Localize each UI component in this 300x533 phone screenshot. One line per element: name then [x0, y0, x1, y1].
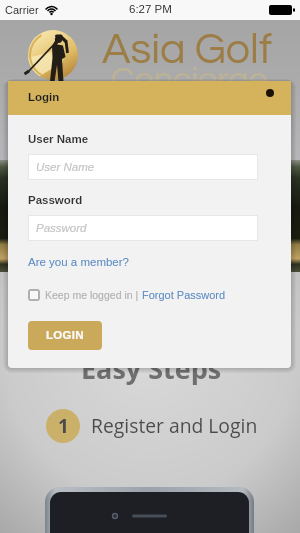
button[interactable]: Are you a member?	[28, 256, 129, 269]
button[interactable]: LOGIN	[28, 321, 102, 350]
staticText: User Name	[36, 161, 95, 174]
staticText: User Name	[28, 133, 89, 146]
staticText: Easy Steps	[81, 350, 222, 387]
staticText: 1	[58, 413, 69, 439]
staticText: Concierge	[111, 62, 268, 97]
staticText: LOGIN	[46, 329, 84, 342]
button[interactable]: Forgot Password	[142, 289, 226, 301]
staticText: Carrier	[5, 4, 39, 16]
button[interactable]: Close	[262, 85, 278, 101]
staticText: Register and Login	[91, 412, 258, 438]
button[interactable]: Password	[28, 215, 258, 241]
staticText: Password	[28, 194, 83, 207]
staticText: Keep me logged in |	[45, 289, 139, 301]
staticText: Login	[28, 91, 60, 104]
staticText: 6:27 PM	[129, 3, 172, 16]
button[interactable]: User Name	[28, 154, 258, 180]
staticText: Asia Golf	[102, 28, 273, 72]
staticText: Password	[36, 222, 87, 235]
button[interactable]: Keep me logged in	[28, 289, 40, 301]
